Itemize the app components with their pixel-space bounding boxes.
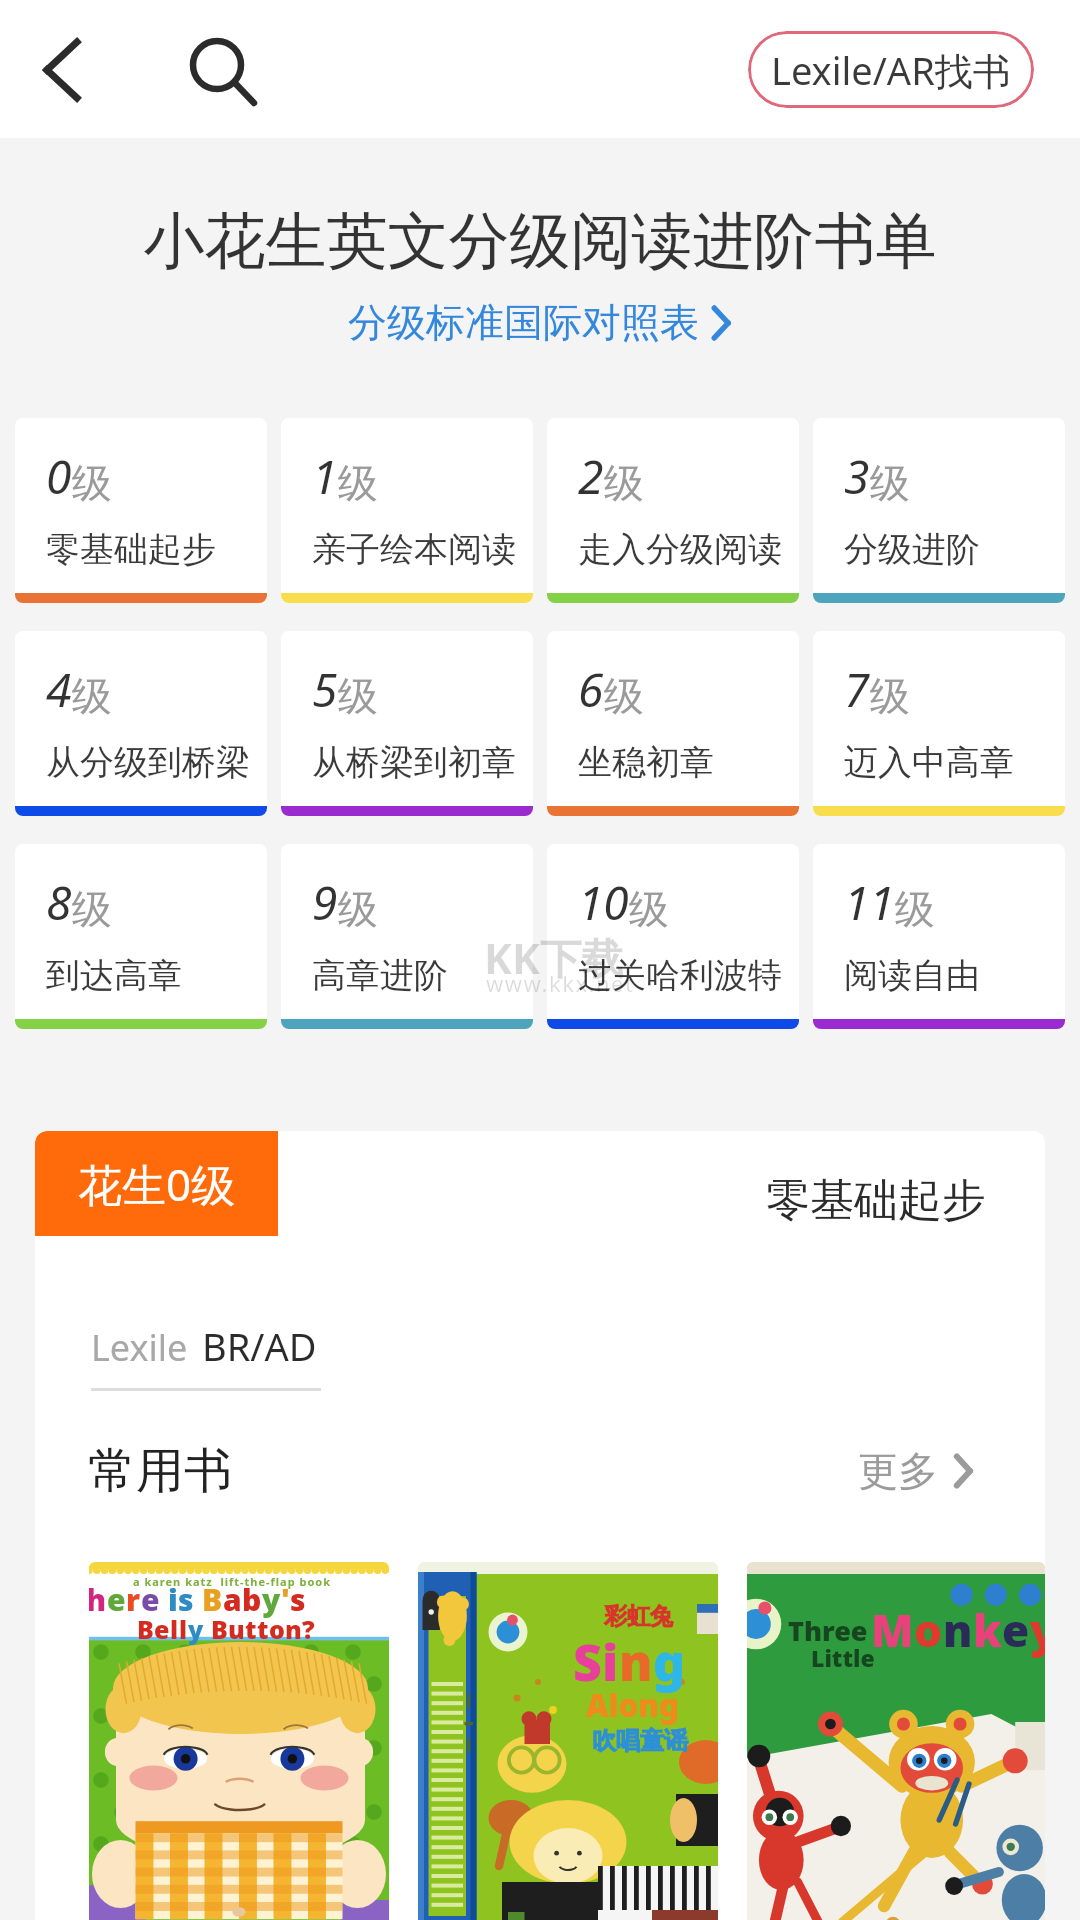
staticText: n bbox=[285, 1612, 302, 1646]
staticText: 分级标准国际对照表 bbox=[348, 298, 699, 347]
button[interactable]: 4 bbox=[15, 631, 267, 816]
staticText: y bbox=[1030, 1600, 1045, 1660]
staticText: M bbox=[871, 1600, 914, 1660]
staticText: 从桥梁到初章 bbox=[312, 741, 516, 784]
staticText: 到达高章 bbox=[46, 954, 182, 997]
button[interactable]: a karen katz lift-the-flap book bbox=[89, 1562, 389, 1920]
staticText: l bbox=[170, 1612, 179, 1646]
button[interactable]: 1 bbox=[281, 418, 533, 603]
staticText: y bbox=[188, 1612, 204, 1646]
staticText: 从分级到桥梁 bbox=[46, 741, 250, 784]
staticText: a karen katz lift-the-flap book bbox=[133, 1574, 332, 1589]
button[interactable]: S bbox=[418, 1562, 718, 1920]
staticText bbox=[204, 1612, 211, 1646]
staticText: 高章进阶 bbox=[312, 954, 448, 997]
staticText: 0 bbox=[46, 445, 72, 508]
staticText: 级 bbox=[604, 458, 644, 508]
staticText: 坐稳初章 bbox=[578, 741, 714, 784]
staticText: 级 bbox=[72, 458, 112, 508]
staticText: 常用书 bbox=[88, 1441, 232, 1501]
staticText: i bbox=[168, 1579, 178, 1620]
staticText: KK下载 bbox=[484, 929, 624, 986]
staticText: 迈入中高章 bbox=[844, 741, 1014, 784]
staticText: e bbox=[154, 1612, 170, 1646]
staticText: 4 bbox=[46, 658, 72, 721]
button[interactable]: 2 bbox=[547, 418, 799, 603]
staticText: Three bbox=[788, 1612, 868, 1649]
staticText: 级 bbox=[72, 671, 112, 721]
button[interactable]: 5 bbox=[281, 631, 533, 816]
staticText: 分级进阶 bbox=[844, 528, 980, 571]
staticText: 10 bbox=[578, 871, 629, 934]
button[interactable]: 11 bbox=[813, 844, 1065, 1029]
staticText: o bbox=[269, 1612, 285, 1646]
staticText: 9 bbox=[312, 871, 338, 934]
button[interactable]: 花生0级 bbox=[35, 1131, 278, 1236]
button[interactable]: Three bbox=[747, 1562, 1045, 1920]
staticText: 过关哈利波特 bbox=[578, 954, 782, 997]
staticText: Lexile/AR找书 bbox=[771, 44, 1011, 96]
staticText: e bbox=[141, 1579, 160, 1620]
staticText: B bbox=[137, 1612, 154, 1646]
staticText: Along bbox=[586, 1684, 679, 1726]
staticText: s bbox=[178, 1579, 194, 1620]
button[interactable]: 7 bbox=[813, 631, 1065, 816]
staticText: k bbox=[973, 1600, 1002, 1660]
staticText: 零基础起步 bbox=[46, 528, 216, 571]
staticText: i bbox=[602, 1628, 619, 1696]
staticText: r bbox=[126, 1579, 141, 1620]
staticText: t bbox=[245, 1612, 257, 1646]
button[interactable]: 更多 bbox=[858, 1446, 974, 1496]
staticText: 2 bbox=[578, 445, 604, 508]
staticText: 1 bbox=[312, 445, 338, 508]
staticText: Little bbox=[811, 1642, 875, 1673]
staticText: n bbox=[943, 1600, 973, 1660]
staticText: 更多 bbox=[858, 1446, 938, 1496]
button[interactable]: Lexile/AR找书 bbox=[748, 31, 1034, 108]
button[interactable]: Back bbox=[0, 10, 120, 130]
staticText: e bbox=[1002, 1600, 1030, 1660]
button[interactable]: 8 bbox=[15, 844, 267, 1029]
staticText: o bbox=[914, 1600, 943, 1660]
button[interactable]: Search bbox=[157, 9, 277, 129]
button[interactable]: 10 bbox=[547, 844, 799, 1029]
button[interactable]: 3 bbox=[813, 418, 1065, 603]
staticText: 级 bbox=[338, 884, 378, 934]
staticText bbox=[160, 1579, 168, 1620]
staticText: n bbox=[619, 1628, 653, 1696]
staticText: 3 bbox=[844, 445, 870, 508]
staticText: 亲子绘本阅读 bbox=[312, 528, 516, 571]
staticText: 级 bbox=[338, 671, 378, 721]
staticText: 级 bbox=[72, 884, 112, 934]
button[interactable]: 9 bbox=[281, 844, 533, 1029]
staticText: B bbox=[202, 1579, 223, 1620]
staticText: t bbox=[257, 1612, 269, 1646]
staticText: 6 bbox=[578, 658, 604, 721]
staticText: 8 bbox=[46, 871, 72, 934]
staticText: 级 bbox=[338, 458, 378, 508]
staticText: Lexile bbox=[91, 1323, 188, 1372]
staticText: 走入分级阅读 bbox=[578, 528, 782, 571]
staticText: 阅读自由 bbox=[844, 954, 980, 997]
staticText: a bbox=[223, 1579, 242, 1620]
staticText: 5 bbox=[312, 658, 338, 721]
staticText: 7 bbox=[844, 658, 870, 721]
button[interactable]: 0 bbox=[15, 418, 267, 603]
staticText: b bbox=[242, 1579, 262, 1620]
staticText bbox=[194, 1579, 202, 1620]
staticText: h bbox=[89, 1579, 107, 1620]
staticText: S bbox=[573, 1628, 602, 1696]
staticText: 小花生英文分级阅读进阶书单 bbox=[0, 203, 1080, 280]
staticText: l bbox=[179, 1612, 188, 1646]
staticText: 吹唱童谣 bbox=[592, 1726, 688, 1756]
staticText: B bbox=[211, 1612, 228, 1646]
button[interactable]: 分级标准国际对照表 bbox=[348, 298, 733, 347]
button[interactable]: 6 bbox=[547, 631, 799, 816]
staticText: BR/AD bbox=[202, 1320, 317, 1372]
staticText: s bbox=[290, 1579, 306, 1620]
staticText: 级 bbox=[629, 884, 669, 934]
staticText: 级 bbox=[604, 671, 644, 721]
staticText: 级 bbox=[870, 458, 910, 508]
staticText: ? bbox=[302, 1612, 315, 1646]
staticText: www.kkx.net bbox=[486, 968, 635, 998]
